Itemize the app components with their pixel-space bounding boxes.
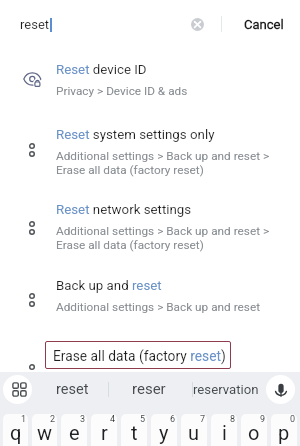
button[interactable]: Clipboard (3, 375, 32, 404)
staticText: reset (56, 381, 89, 398)
staticText: p (278, 421, 290, 444)
staticText: y (159, 421, 169, 444)
staticText: t (131, 421, 138, 444)
staticText: 0 (290, 414, 296, 425)
staticText: o (248, 421, 260, 444)
button[interactable]: 7 (181, 414, 207, 446)
staticText: Additional settings > Back up and reset … (56, 224, 276, 252)
button[interactable]: Back up and reset (56, 278, 276, 314)
staticText: 1 (21, 414, 27, 425)
staticText: Privacy > Device ID & ads (56, 84, 188, 98)
staticText: reser (132, 380, 166, 398)
button[interactable]: reset (46, 372, 99, 406)
staticText: 3 (80, 414, 86, 425)
staticText: 6 (170, 414, 176, 425)
staticText: Additional settings > Back up and reset … (56, 149, 276, 177)
staticText: Reset network settings (56, 202, 192, 218)
button[interactable]: Cancel (238, 9, 290, 40)
staticText: Cancel (244, 17, 284, 32)
button[interactable]: Erase all data (factory reset) (45, 341, 231, 369)
staticText: u (188, 421, 200, 444)
staticText: reservation (193, 382, 259, 397)
button[interactable]: reservation (192, 372, 260, 406)
staticText: 4 (110, 414, 116, 425)
button[interactable]: 5 (121, 414, 147, 446)
staticText: 2 (50, 414, 56, 425)
button[interactable]: 4 (91, 414, 117, 446)
staticText: Back up and reset (56, 278, 162, 294)
staticText: Reset system settings only (56, 127, 215, 143)
button[interactable]: 0 (271, 414, 297, 446)
staticText: Reset device ID (56, 62, 147, 78)
staticText: w (37, 421, 53, 444)
staticText: r (101, 421, 108, 444)
staticText: i (222, 421, 227, 444)
staticText: 5 (140, 414, 146, 425)
button[interactable]: 3 (61, 414, 87, 446)
button[interactable]: reser (128, 372, 170, 406)
button[interactable]: Reset network settings (56, 202, 276, 252)
staticText: q (10, 421, 22, 444)
button[interactable]: Reset device ID (56, 62, 276, 98)
button[interactable]: reset (20, 17, 52, 32)
staticText: reset (20, 17, 50, 32)
staticText: 9 (260, 414, 266, 425)
button[interactable]: Reset system settings only (56, 127, 276, 177)
button[interactable]: 2 (32, 414, 57, 446)
button[interactable]: 8 (211, 414, 237, 446)
button[interactable]: Voice input (266, 375, 295, 404)
staticText: 8 (230, 414, 236, 425)
staticText: Additional settings > Back up and reset (56, 300, 260, 314)
button[interactable]: Clear search (184, 11, 210, 37)
button[interactable]: 6 (151, 414, 177, 446)
staticText: 7 (200, 414, 206, 425)
staticText: Erase all data (factory reset) (53, 348, 226, 364)
staticText: e (69, 421, 80, 444)
button[interactable]: 9 (241, 414, 267, 446)
button[interactable]: 1 (3, 414, 28, 446)
